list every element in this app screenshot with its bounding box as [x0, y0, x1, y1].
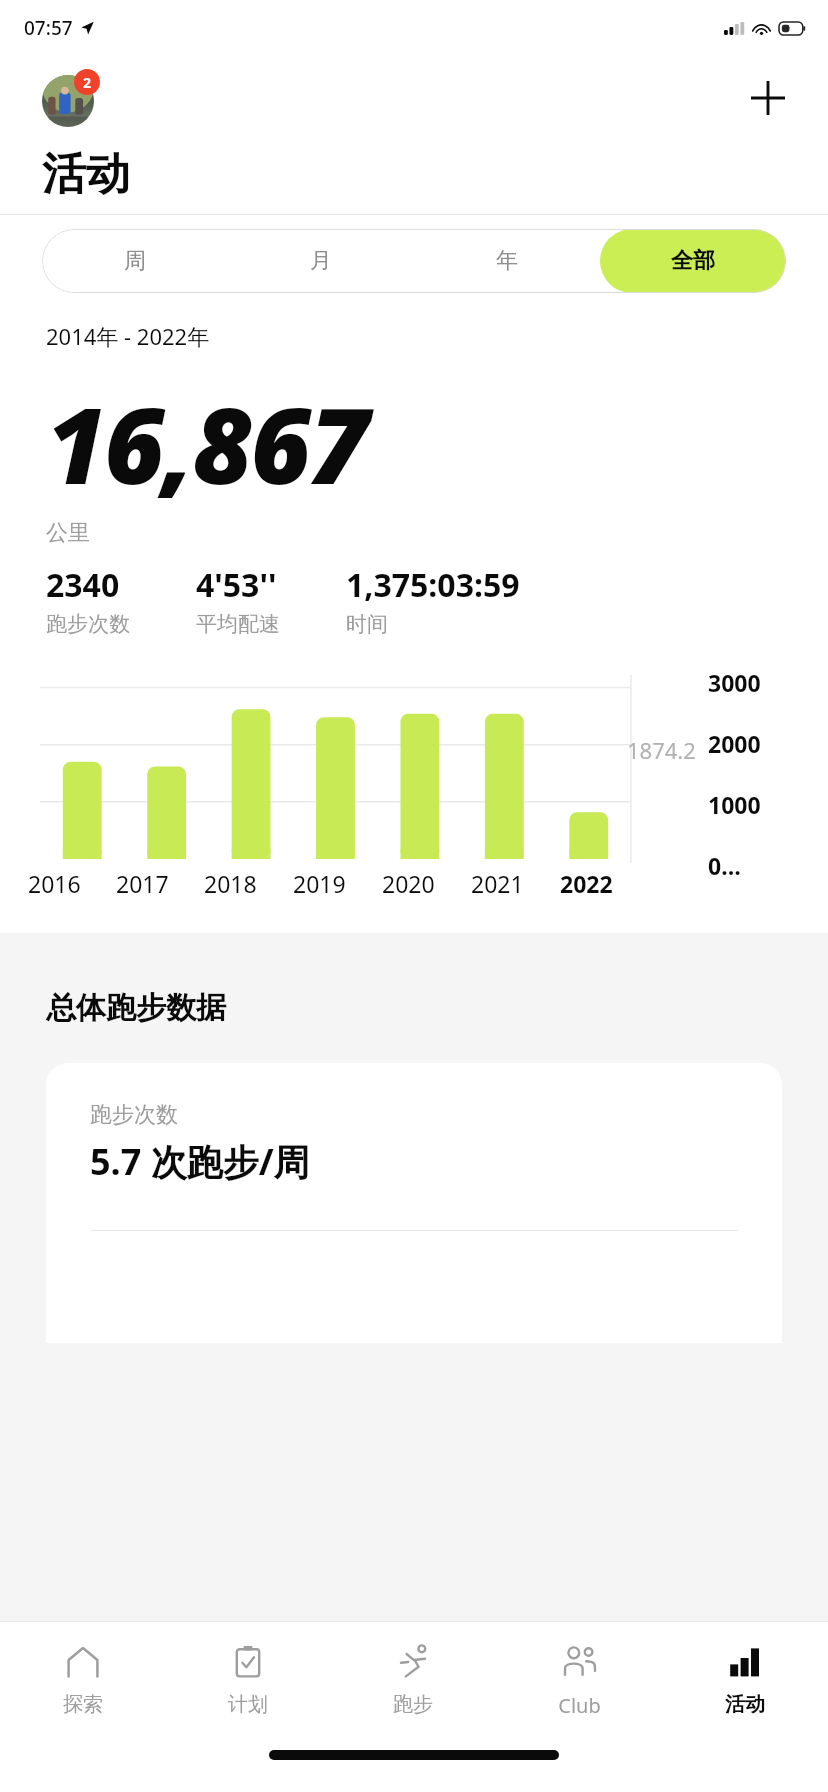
- staticText: 1,375:03:59: [346, 563, 520, 607]
- button[interactable]: 活动: [662, 1622, 828, 1744]
- staticText: 2017: [116, 868, 169, 899]
- staticText: 1000: [708, 789, 761, 820]
- staticText: 探索: [63, 1692, 103, 1717]
- staticText: 0…: [708, 850, 741, 881]
- staticText: 平均配速: [196, 611, 280, 637]
- staticText: 活动: [725, 1692, 765, 1717]
- button[interactable]: 月: [228, 229, 414, 293]
- staticText: 总体跑步数据: [46, 989, 226, 1027]
- staticText: 月: [310, 247, 332, 275]
- staticText: 2: [83, 73, 92, 92]
- staticText: 4'53'': [196, 563, 277, 607]
- staticText: 2000: [708, 728, 761, 759]
- staticText: 5.7 次跑步/周: [90, 1137, 310, 1186]
- staticText: 2340: [46, 563, 120, 607]
- staticText: 2022: [560, 868, 613, 899]
- staticText: 公里: [46, 519, 90, 547]
- button[interactable]: 周: [42, 229, 228, 293]
- staticText: 2019: [293, 868, 346, 899]
- staticText: 3000: [708, 667, 761, 698]
- staticText: 跑步次数: [46, 611, 130, 637]
- staticText: 活动: [42, 147, 130, 202]
- button[interactable]: 探索: [0, 1622, 165, 1744]
- staticText: 年: [496, 247, 518, 275]
- button[interactable]: 跑步: [330, 1622, 496, 1744]
- staticText: 16,867: [46, 373, 368, 515]
- button[interactable]: 年: [414, 229, 600, 293]
- button[interactable]: Club: [496, 1622, 662, 1744]
- staticText: 周: [124, 247, 146, 275]
- staticText: 2018: [204, 868, 257, 899]
- staticText: 跑步: [393, 1692, 433, 1717]
- button[interactable]: Profile: [42, 69, 100, 127]
- staticText: 2016: [28, 868, 81, 899]
- staticText: 2020: [382, 868, 435, 899]
- button[interactable]: 全部: [600, 229, 786, 293]
- button[interactable]: 计划: [165, 1622, 330, 1744]
- staticText: 07:57: [24, 15, 73, 41]
- staticText: 全部: [671, 247, 715, 275]
- button[interactable]: Add: [744, 74, 792, 122]
- staticText: 2021: [471, 868, 524, 899]
- staticText: Club: [558, 1692, 601, 1719]
- staticText: 2014年 - 2022年: [46, 321, 210, 351]
- staticText: 计划: [228, 1692, 268, 1717]
- staticText: 1874.2: [627, 735, 696, 765]
- staticText: 跑步次数: [90, 1101, 178, 1129]
- button[interactable]: 跑步次数: [46, 1063, 782, 1343]
- staticText: 时间: [346, 611, 388, 637]
